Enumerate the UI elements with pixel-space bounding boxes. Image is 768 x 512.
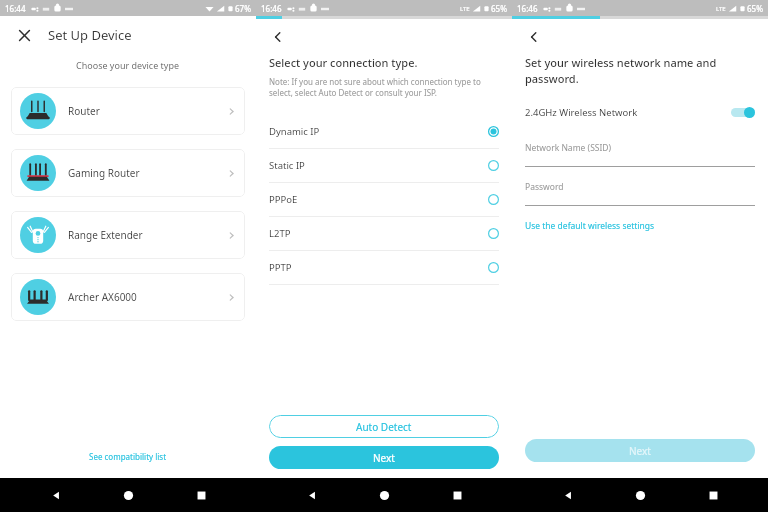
staticText: L2TP — [269, 227, 291, 240]
button[interactable]: Recents — [696, 478, 730, 512]
staticText: Auto Detect — [356, 420, 412, 434]
button[interactable]: Home — [111, 478, 145, 512]
button[interactable]: Close — [10, 21, 38, 49]
staticText: 16:44 — [5, 3, 26, 14]
staticText: 65% — [491, 3, 507, 14]
button[interactable]: PPTP — [256, 251, 512, 285]
staticText: Password — [525, 181, 564, 193]
staticText: Use the default wireless settings — [525, 220, 655, 232]
button[interactable]: Home — [623, 478, 657, 512]
staticText: Choose your device type — [76, 59, 180, 71]
staticText: Network Name (SSID) — [525, 142, 612, 154]
button[interactable]: Network Name (SSID) — [525, 142, 755, 167]
button[interactable]: L2TP — [256, 217, 512, 251]
button[interactable]: Router — [11, 87, 245, 135]
button[interactable]: Next — [525, 439, 755, 462]
staticText: Static IP — [269, 159, 305, 172]
button[interactable]: Gaming Router — [11, 149, 245, 197]
staticText: Select your connection type. — [269, 55, 418, 70]
staticText: 16:46 — [261, 3, 282, 14]
button[interactable]: Home — [367, 478, 401, 512]
button[interactable]: Password — [525, 181, 755, 206]
button[interactable]: PPPoE — [256, 183, 512, 217]
staticText: 16:46 — [517, 3, 538, 14]
staticText: Next — [373, 451, 395, 465]
button[interactable]: See compatibility list — [85, 447, 171, 466]
staticText: PPPoE — [269, 193, 298, 206]
staticText: Router — [68, 104, 100, 118]
staticText: LTE — [460, 5, 470, 13]
staticText: Next — [629, 444, 651, 458]
staticText: 2.4GHz Wireless Network — [525, 106, 638, 119]
staticText: See compatibility list — [89, 451, 167, 462]
button[interactable]: Static IP — [256, 149, 512, 183]
button[interactable]: Dynamic IP — [256, 115, 512, 149]
button[interactable]: Next — [269, 446, 499, 469]
button[interactable]: Back — [39, 478, 73, 512]
button[interactable]: Back — [551, 478, 585, 512]
button[interactable]: Range Extender — [11, 211, 245, 259]
staticText: Set Up Device — [48, 26, 132, 44]
button[interactable]: Archer AX6000 — [11, 273, 245, 321]
staticText: Note: If you are not sure about which co… — [269, 76, 481, 99]
staticText: Range Extender — [68, 228, 143, 242]
staticText: Gaming Router — [68, 166, 140, 180]
staticText: 65% — [747, 3, 763, 14]
button[interactable]: Back — [295, 478, 329, 512]
staticText: Set your wireless network name and passw… — [525, 55, 717, 86]
button[interactable]: Back — [266, 25, 290, 49]
staticText: Dynamic IP — [269, 125, 320, 138]
staticText: 67% — [235, 3, 251, 14]
button[interactable]: Recents — [184, 478, 218, 512]
button[interactable]: 2.4GHz Wireless Network — [525, 102, 755, 122]
staticText: Archer AX6000 — [68, 290, 137, 304]
button[interactable]: Auto Detect — [269, 415, 499, 438]
button[interactable]: Recents — [440, 478, 474, 512]
button[interactable]: Back — [522, 25, 546, 49]
button[interactable]: Use the default wireless settings — [525, 220, 655, 232]
staticText: LTE — [716, 5, 726, 13]
staticText: PPTP — [269, 261, 292, 274]
